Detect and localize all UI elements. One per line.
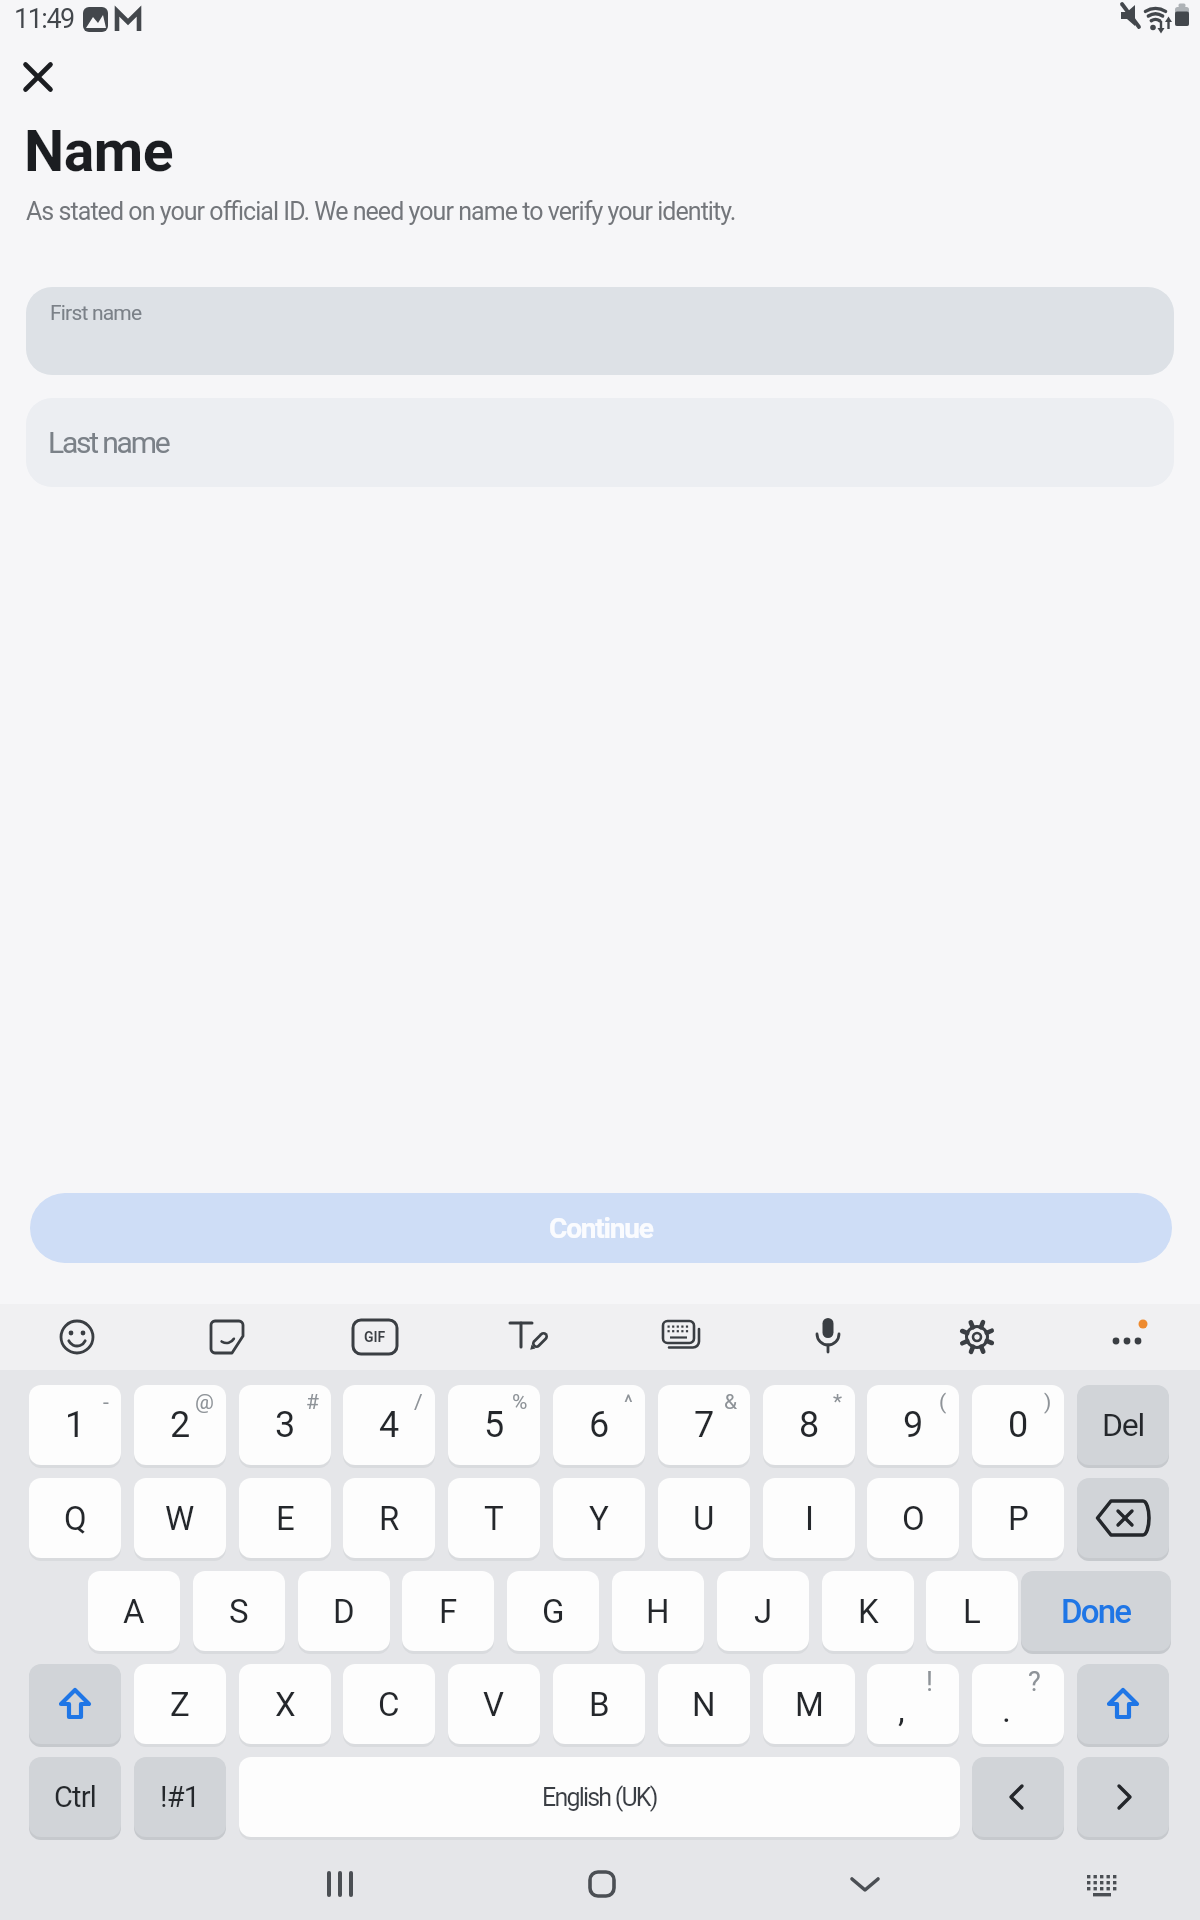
button[interactable]: 3 — [239, 1385, 331, 1465]
staticText: K — [858, 1592, 879, 1631]
button[interactable] — [53, 1313, 101, 1361]
button[interactable]: First name — [26, 287, 1174, 375]
staticText: & — [724, 1390, 738, 1415]
button[interactable]: . — [972, 1664, 1064, 1744]
button[interactable]: English (UK) — [239, 1757, 960, 1837]
staticText: F — [439, 1592, 458, 1631]
button[interactable]: V — [448, 1664, 540, 1744]
staticText: ) — [1044, 1390, 1052, 1415]
staticText: T — [484, 1499, 504, 1538]
button[interactable] — [1072, 1854, 1132, 1914]
staticText: A — [123, 1592, 145, 1631]
button[interactable]: K — [822, 1571, 914, 1651]
button[interactable]: S — [193, 1571, 285, 1651]
button[interactable]: M — [763, 1664, 855, 1744]
button[interactable] — [1077, 1478, 1169, 1558]
button[interactable]: , — [867, 1664, 959, 1744]
staticText: 11:49 — [14, 3, 74, 35]
staticText: 9 — [903, 1404, 924, 1446]
staticText: 6 — [589, 1404, 610, 1446]
button[interactable] — [1077, 1664, 1169, 1744]
staticText: 0 — [1008, 1404, 1029, 1446]
button[interactable]: N — [658, 1664, 750, 1744]
button[interactable]: X — [239, 1664, 331, 1744]
staticText: - — [103, 1390, 109, 1415]
button[interactable]: G — [507, 1571, 599, 1651]
button[interactable]: W — [134, 1478, 226, 1558]
button[interactable]: GIF — [351, 1319, 399, 1355]
button[interactable]: B — [553, 1664, 645, 1744]
button[interactable] — [572, 1854, 632, 1914]
button[interactable]: F — [402, 1571, 494, 1651]
staticText: Name — [24, 118, 173, 185]
button[interactable] — [972, 1757, 1064, 1837]
staticText: 2 — [170, 1404, 191, 1446]
button[interactable]: C — [343, 1664, 435, 1744]
button[interactable]: 7 — [658, 1385, 750, 1465]
button[interactable]: 4 — [343, 1385, 435, 1465]
button[interactable]: I — [763, 1478, 855, 1558]
button[interactable]: 2 — [134, 1385, 226, 1465]
staticText: W — [165, 1499, 195, 1538]
staticText: J — [754, 1592, 773, 1631]
staticText: Done — [1061, 1592, 1131, 1631]
staticText: L — [963, 1592, 981, 1631]
button[interactable]: !#1 — [134, 1757, 226, 1837]
button[interactable] — [804, 1313, 852, 1361]
staticText: E — [276, 1499, 295, 1538]
button[interactable]: Z — [134, 1664, 226, 1744]
button[interactable]: E — [239, 1478, 331, 1558]
button[interactable] — [203, 1313, 251, 1361]
staticText: N — [692, 1685, 716, 1724]
button[interactable] — [1077, 1757, 1169, 1837]
staticText: 3 — [275, 1404, 296, 1446]
button[interactable] — [953, 1313, 1001, 1361]
staticText: M — [795, 1685, 824, 1724]
staticText: H — [646, 1592, 670, 1631]
staticText: X — [275, 1685, 296, 1724]
button[interactable] — [13, 52, 63, 102]
staticText: First name — [50, 301, 142, 326]
button[interactable]: Q — [29, 1478, 121, 1558]
button[interactable] — [310, 1854, 370, 1914]
button[interactable]: Del — [1077, 1385, 1169, 1465]
button[interactable]: J — [717, 1571, 809, 1651]
button[interactable]: H — [612, 1571, 704, 1651]
button[interactable]: D — [298, 1571, 390, 1651]
button[interactable]: 9 — [867, 1385, 959, 1465]
button[interactable]: O — [867, 1478, 959, 1558]
staticText: . — [1002, 1690, 1011, 1730]
button[interactable] — [1103, 1313, 1151, 1361]
button[interactable]: Last name — [26, 398, 1174, 487]
button[interactable]: U — [658, 1478, 750, 1558]
staticText: Ctrl — [54, 1780, 97, 1814]
button[interactable]: T — [448, 1478, 540, 1558]
staticText: 1 — [65, 1404, 86, 1446]
staticText: U — [693, 1499, 715, 1538]
button[interactable]: 1 — [29, 1385, 121, 1465]
button[interactable]: Ctrl — [29, 1757, 121, 1837]
button[interactable]: P — [972, 1478, 1064, 1558]
staticText: # — [306, 1390, 319, 1415]
staticText: , — [898, 1690, 905, 1730]
button[interactable]: Continue — [30, 1193, 1172, 1263]
button[interactable] — [29, 1664, 121, 1744]
staticText: S — [229, 1592, 249, 1631]
button[interactable]: 5 — [448, 1385, 540, 1465]
button[interactable]: Done — [1021, 1571, 1171, 1651]
button[interactable]: 6 — [553, 1385, 645, 1465]
staticText: B — [589, 1685, 610, 1724]
button[interactable]: A — [88, 1571, 180, 1651]
staticText: English (UK) — [542, 1783, 657, 1812]
button[interactable]: 8 — [763, 1385, 855, 1465]
button[interactable]: R — [343, 1478, 435, 1558]
button[interactable] — [656, 1313, 704, 1361]
button[interactable] — [835, 1854, 895, 1914]
staticText: O — [902, 1499, 925, 1538]
button[interactable]: 0 — [972, 1385, 1064, 1465]
button[interactable]: L — [926, 1571, 1018, 1651]
button[interactable] — [503, 1313, 551, 1361]
staticText: ^ — [624, 1390, 633, 1415]
staticText: V — [483, 1685, 505, 1724]
button[interactable]: Y — [553, 1478, 645, 1558]
